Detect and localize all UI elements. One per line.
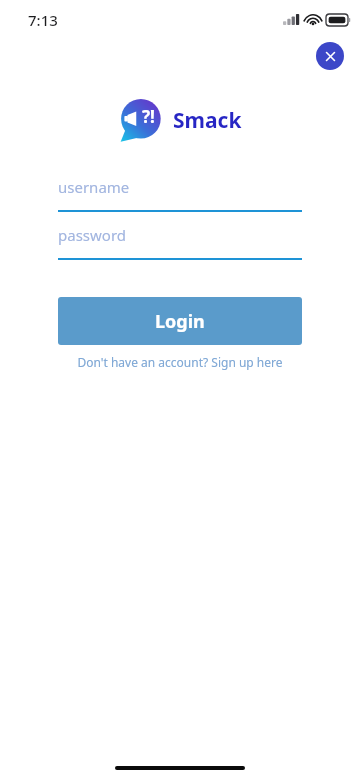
staticText: ?!: [142, 105, 155, 128]
staticText: username: [58, 177, 130, 197]
button[interactable]: Don't have an account? Sign up here: [0, 351, 360, 373]
button[interactable]: Login: [58, 297, 302, 345]
staticText: 7:13: [28, 10, 58, 30]
button[interactable]: username: [58, 176, 302, 212]
staticText: Login: [155, 309, 205, 334]
staticText: Smack: [173, 106, 242, 135]
staticText: Don't have an account? Sign up here: [77, 354, 283, 370]
staticText: password: [58, 225, 126, 245]
button[interactable]: password: [58, 224, 302, 260]
button[interactable]: Close: [316, 42, 344, 70]
